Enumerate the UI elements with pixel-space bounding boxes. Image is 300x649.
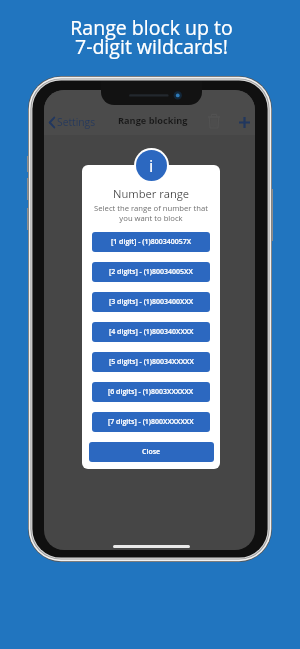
- staticText: Range block up to 7-digit wildcards!: [70, 14, 233, 60]
- staticText: Settings: [57, 115, 96, 129]
- staticText: [1 digit] - (1)800340057X: [111, 237, 191, 247]
- staticText: [4 digits] - (1)800340XXXX: [109, 327, 194, 337]
- staticText: [7 digits] - (1)800XXXXXXX: [108, 417, 194, 427]
- staticText: [2 digits] - (1)80034005XX: [109, 267, 193, 277]
- staticText: Select the range of number that you want…: [94, 203, 208, 223]
- staticText: i: [149, 154, 154, 177]
- staticText: Number range: [113, 186, 190, 201]
- button[interactable]: [3 digits] - (1)8003400XXX: [92, 292, 210, 312]
- staticText: Close: [142, 447, 161, 457]
- button[interactable]: [4 digits] - (1)800340XXXX: [92, 322, 210, 342]
- button[interactable]: [7 digits] - (1)800XXXXXXX: [92, 412, 210, 432]
- button[interactable]: [6 digits] - (1)8003XXXXXX: [92, 382, 210, 402]
- staticText: [3 digits] - (1)8003400XXX: [109, 297, 194, 307]
- button[interactable]: [2 digits] - (1)80034005XX: [92, 262, 210, 282]
- button[interactable]: Add: [235, 113, 253, 131]
- staticText: Range blocking: [118, 114, 188, 127]
- button[interactable]: [5 digits] - (1)80034XXXXX: [92, 352, 210, 372]
- button[interactable]: [1 digit] - (1)800340057X: [92, 232, 210, 252]
- staticText: [6 digits] - (1)8003XXXXXX: [108, 387, 194, 397]
- staticText: [5 digits] - (1)80034XXXXX: [109, 357, 194, 367]
- button[interactable]: Settings: [46, 113, 99, 131]
- button[interactable]: Close: [89, 442, 214, 462]
